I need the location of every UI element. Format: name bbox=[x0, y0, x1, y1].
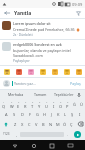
button[interactable]: Ğ bbox=[71, 100, 78, 109]
button[interactable]: Teşekkürler bbox=[52, 92, 76, 97]
button[interactable]: 1 bbox=[0, 100, 8, 109]
staticText: V bbox=[35, 122, 38, 127]
button[interactable]: 0 bbox=[64, 100, 71, 109]
staticText: N bbox=[49, 122, 53, 127]
button[interactable]: Keyboard bbox=[66, 141, 75, 150]
button[interactable]: Emoji bbox=[39, 68, 46, 75]
staticText: Yanıtını yaz... bbox=[14, 81, 69, 86]
staticText: Tamam bbox=[34, 92, 47, 97]
button[interactable]: Tamam bbox=[28, 92, 52, 97]
button[interactable]: Emoji bbox=[63, 68, 70, 75]
button[interactable]: Shift bbox=[0, 119, 11, 129]
button[interactable]: Emoji bbox=[51, 68, 58, 75]
button[interactable]: 7 bbox=[43, 100, 50, 109]
staticText: Crema/Zinede pad Fenebahce, 66:36 bbox=[13, 27, 75, 32]
button[interactable]: Backspace bbox=[75, 119, 85, 129]
button[interactable]: Ö bbox=[61, 119, 68, 129]
button[interactable]: 9 bbox=[57, 100, 64, 109]
button[interactable]: Paylaş bbox=[69, 81, 82, 86]
button[interactable]: 2 bbox=[8, 100, 15, 109]
button[interactable]: Back bbox=[3, 9, 11, 17]
button[interactable]: A bbox=[2, 109, 10, 119]
staticText: , bbox=[16, 132, 17, 137]
staticText: U bbox=[45, 104, 48, 109]
button[interactable]: J bbox=[48, 109, 55, 119]
button[interactable]: Ş bbox=[69, 109, 76, 119]
staticText: Ü bbox=[80, 102, 83, 107]
button[interactable]: Lorem ipsum dolor sit bbox=[0, 19, 85, 39]
staticText: Yanıtla bbox=[14, 10, 32, 17]
button[interactable]: 8 bbox=[50, 100, 57, 109]
button[interactable]: C bbox=[26, 119, 33, 129]
button[interactable]: Recents bbox=[47, 141, 56, 150]
staticText: Ş bbox=[71, 112, 74, 117]
staticText: Merhaba bbox=[8, 92, 24, 97]
staticText: bujsonlar, olanda ve paylaşın intiel Sav… bbox=[13, 48, 83, 58]
staticText: T bbox=[31, 104, 34, 109]
button[interactable]: H bbox=[41, 109, 48, 119]
staticText: 0 bbox=[67, 101, 69, 104]
button[interactable]: Emoji bbox=[15, 68, 22, 75]
staticText: 09:09 bbox=[72, 2, 83, 7]
staticText: Ğ bbox=[73, 102, 76, 107]
staticText: E bbox=[17, 104, 20, 109]
button[interactable]: 4 bbox=[22, 100, 29, 109]
staticText: 8 bbox=[53, 101, 55, 104]
button[interactable]: I bbox=[76, 109, 83, 119]
button[interactable]: Emoji bbox=[3, 68, 10, 75]
staticText: W bbox=[10, 104, 14, 109]
staticText: K bbox=[57, 112, 60, 117]
staticText: Ç bbox=[70, 122, 73, 127]
button[interactable]: X bbox=[19, 119, 26, 129]
button[interactable]: Emoji bbox=[75, 68, 82, 75]
button[interactable]: Ü bbox=[78, 100, 85, 109]
button[interactable]: Back bbox=[10, 141, 19, 150]
staticText: 4 bbox=[25, 101, 27, 104]
button[interactable]: Voice input bbox=[76, 93, 82, 97]
staticText: . bbox=[67, 132, 68, 137]
staticText: P bbox=[66, 104, 69, 109]
staticText: C bbox=[28, 122, 31, 127]
staticText: H bbox=[43, 112, 46, 117]
staticText: Paylaşılıyor bbox=[13, 59, 30, 63]
button[interactable]: M bbox=[54, 119, 61, 129]
staticText: erdgek0006 Sonderst en uzk bbox=[13, 42, 62, 47]
button[interactable]: ?123 bbox=[1, 129, 12, 139]
staticText: 2 bbox=[11, 101, 13, 104]
staticText: ?123 bbox=[3, 132, 10, 136]
staticText: Q bbox=[2, 104, 6, 109]
button[interactable]: F bbox=[26, 109, 34, 119]
button[interactable]: N bbox=[47, 119, 54, 129]
button[interactable]: G bbox=[34, 109, 41, 119]
button[interactable]: Emoji bbox=[27, 68, 34, 75]
button[interactable]: S bbox=[10, 109, 18, 119]
staticText: S bbox=[13, 112, 16, 117]
staticText: J bbox=[51, 112, 53, 117]
button[interactable]: K bbox=[55, 109, 62, 119]
button[interactable]: 5 bbox=[29, 100, 36, 109]
button[interactable]: Ç bbox=[68, 119, 75, 129]
button[interactable]: Home bbox=[29, 141, 38, 150]
button[interactable]: B bbox=[40, 119, 47, 129]
staticText: R bbox=[24, 104, 27, 109]
staticText: 9 bbox=[60, 101, 62, 104]
staticText: 1 bbox=[3, 101, 5, 104]
button[interactable]: D bbox=[18, 109, 26, 119]
button[interactable]: 6 bbox=[36, 100, 43, 109]
staticText: D bbox=[21, 112, 24, 117]
button[interactable]: 3 bbox=[15, 100, 22, 109]
button[interactable]: Send bbox=[71, 129, 84, 139]
button[interactable]: L bbox=[62, 109, 69, 119]
button[interactable]: Merhaba bbox=[3, 92, 28, 97]
staticText: X bbox=[21, 122, 24, 127]
button[interactable]: , bbox=[12, 129, 20, 139]
button[interactable]: Yanıtını yaz... bbox=[0, 78, 85, 89]
button[interactable]: Z bbox=[11, 119, 19, 129]
button[interactable]: V bbox=[33, 119, 40, 129]
staticText: L bbox=[64, 112, 67, 117]
button[interactable]: erdgek0006 Sonderst en uzk bbox=[0, 40, 85, 65]
staticText: F bbox=[29, 112, 32, 117]
button[interactable]: Share bbox=[74, 9, 82, 17]
